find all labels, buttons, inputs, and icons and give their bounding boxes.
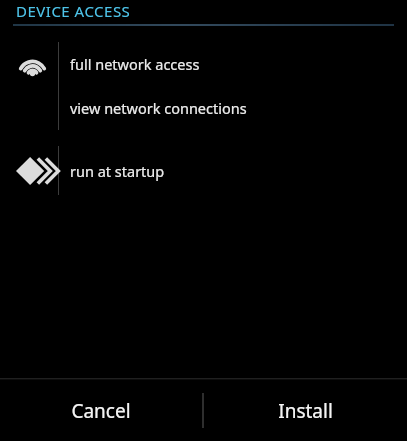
button[interactable]: view network connections: [59, 86, 394, 130]
button[interactable]: full network access: [59, 42, 394, 86]
staticText: Cancel: [71, 398, 131, 424]
staticText: view network connections: [70, 98, 247, 118]
button[interactable]: Cancel: [0, 380, 202, 441]
staticText: Install: [278, 398, 333, 424]
staticText: full network access: [70, 54, 200, 74]
other: Full network access: [18, 50, 47, 77]
staticText: run at startup: [70, 161, 165, 181]
staticText: DEVICE ACCESS: [16, 1, 131, 21]
button[interactable]: Install: [204, 380, 407, 441]
button[interactable]: run at startup: [59, 149, 394, 193]
other: Run at startup: [16, 156, 49, 186]
